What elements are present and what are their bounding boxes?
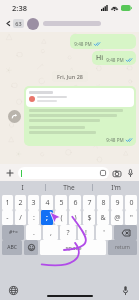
- button[interactable]: Dictation: [120, 285, 131, 296]
- staticText: 9:48 PM: [106, 137, 124, 143]
- staticText: I'm: [111, 183, 121, 192]
- button[interactable]: Attach: [4, 167, 15, 178]
- button[interactable]: 8: [97, 195, 109, 210]
- button[interactable]: ,: [43, 225, 58, 240]
- button[interactable]: [100, 170, 106, 176]
- staticText: ABC: [7, 244, 17, 251]
- button[interactable]: [18, 167, 109, 179]
- staticText: ': [103, 228, 105, 238]
- staticText: 9: [115, 198, 120, 208]
- staticText: Hi: [96, 53, 103, 63]
- staticText: ): [74, 213, 77, 223]
- staticText: 7: [87, 198, 92, 208]
- button[interactable]: $: [83, 210, 95, 225]
- button[interactable]: Back: [0, 15, 139, 32]
- button[interactable]: Forward: [8, 110, 21, 123]
- button[interactable]: 63: [15, 20, 22, 27]
- button[interactable]: ): [69, 210, 81, 225]
- button[interactable]: The: [46, 181, 92, 194]
- button[interactable]: 0: [125, 195, 137, 210]
- button[interactable]: ": [125, 210, 137, 225]
- staticText: &: [100, 213, 106, 223]
- button[interactable]: 7: [83, 195, 95, 210]
- staticText: ,: [50, 228, 52, 238]
- staticText: return: [115, 244, 130, 251]
- button[interactable]: ABC: [2, 240, 22, 255]
- button[interactable]: 9: [111, 195, 123, 210]
- staticText: @: [114, 213, 121, 223]
- staticText: 6: [73, 198, 78, 208]
- staticText: ": [130, 213, 133, 223]
- button[interactable]: 3: [28, 195, 39, 210]
- staticText: /: [19, 213, 22, 223]
- button[interactable]: return: [108, 240, 137, 255]
- button[interactable]: &: [97, 210, 109, 225]
- staticText: ?: [66, 228, 70, 238]
- staticText: The: [63, 183, 75, 192]
- staticText: 2:38: [12, 3, 27, 13]
- button[interactable]: 1: [2, 195, 13, 210]
- staticText: 9:48 PM: [74, 41, 92, 47]
- staticText: 4: [45, 198, 50, 208]
- button[interactable]: #+=: [2, 225, 24, 240]
- staticText: 5: [59, 198, 64, 208]
- staticText: 9:48 PM: [106, 57, 124, 63]
- button[interactable]: 6: [69, 195, 81, 210]
- button[interactable]: 9:48 PM: [70, 34, 136, 49]
- staticText: #+=: [9, 229, 18, 236]
- button[interactable]: !: [78, 225, 94, 240]
- button[interactable]: 4: [41, 195, 53, 210]
- button[interactable]: Emoji: [24, 240, 38, 255]
- staticText: Fri, Jun 28: [57, 73, 83, 80]
- button[interactable]: :: [28, 210, 39, 225]
- button[interactable]: .: [26, 225, 41, 240]
- staticText: 1: [5, 198, 10, 208]
- staticText: 63: [15, 20, 22, 27]
- staticText: I: [21, 183, 24, 192]
- staticText: !: [85, 228, 87, 238]
- button[interactable]: ': [96, 225, 112, 240]
- button[interactable]: @: [111, 210, 123, 225]
- staticText: 2: [18, 198, 23, 208]
- button[interactable]: I'm: [93, 181, 139, 194]
- staticText: (: [60, 213, 63, 223]
- button[interactable]: ;: [41, 210, 53, 225]
- button[interactable]: 9:48 PM: [24, 86, 136, 146]
- button[interactable]: I: [0, 181, 45, 194]
- staticText: -: [6, 213, 9, 223]
- staticText: 0: [129, 198, 134, 208]
- staticText: $: [87, 213, 92, 223]
- button[interactable]: Back: [4, 19, 13, 28]
- button[interactable]: ?: [60, 225, 76, 240]
- staticText: .: [33, 228, 35, 238]
- button[interactable]: Backspace: [114, 225, 137, 240]
- button[interactable]: -: [2, 210, 13, 225]
- button[interactable]: Change keyboard: [8, 285, 19, 296]
- button[interactable]: Voice message: [125, 168, 135, 178]
- staticText: :: [33, 213, 35, 223]
- staticText: space: [65, 244, 82, 252]
- staticText: 3: [31, 198, 36, 208]
- button[interactable]: /: [15, 210, 26, 225]
- button[interactable]: (: [55, 210, 67, 225]
- staticText: ;: [46, 213, 48, 223]
- button[interactable]: space: [40, 240, 106, 255]
- button[interactable]: Hi: [92, 51, 136, 65]
- button[interactable]: Camera: [112, 168, 122, 178]
- button[interactable]: 5: [55, 195, 67, 210]
- button[interactable]: 2: [15, 195, 26, 210]
- staticText: 8: [101, 198, 106, 208]
